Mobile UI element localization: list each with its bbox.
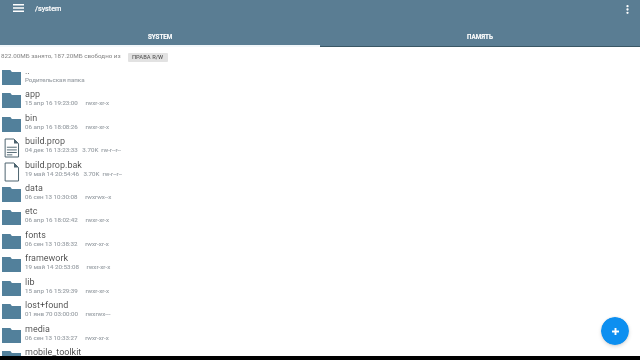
staticText: 06 апр 16 18:08:26 rwxr-xr-x	[25, 123, 110, 130]
button[interactable]: Add	[601, 317, 629, 345]
button[interactable]: build.prop.bak	[0, 160, 640, 183]
button[interactable]: SYSTEM	[0, 25, 320, 47]
staticText: lib	[25, 277, 35, 288]
staticText: /system	[35, 4, 62, 12]
button[interactable]: ПРАВА R/W	[128, 53, 168, 62]
button[interactable]: ПАМЯТЬ	[320, 25, 640, 47]
staticText: build.prop.bak	[25, 160, 82, 171]
button[interactable]: media	[0, 324, 640, 347]
staticText: bin	[25, 113, 38, 124]
staticText: 822.00МБ занято, 187.20МБ свободно из	[1, 52, 121, 59]
staticText: 06 апр 16 18:02:42 rwxr-xr-x	[25, 216, 110, 223]
button[interactable]: fonts	[0, 230, 640, 253]
staticText: 19 май 14 20:54:46 3.70K rw-r--r--	[25, 170, 123, 177]
button[interactable]: build.prop	[0, 136, 640, 159]
staticText: app	[25, 89, 41, 100]
staticText: Родительская папка	[25, 76, 85, 83]
button[interactable]: framework	[0, 253, 640, 276]
staticText: SYSTEM	[148, 33, 173, 40]
staticText: 01 янв 70 03:00:00 rwxrwx---	[25, 310, 111, 317]
staticText: 15 апр 16 19:23:00 rwxr-xr-x	[25, 99, 110, 106]
staticText: mobile_toolkit	[25, 347, 82, 358]
button[interactable]: Open navigation drawer	[7, 0, 29, 19]
staticText: ПРАВА R/W	[132, 54, 164, 61]
button[interactable]: lib	[0, 277, 640, 300]
staticText: fonts	[25, 230, 46, 241]
staticText: etc	[25, 206, 38, 217]
button[interactable]: bin	[0, 113, 640, 136]
staticText: 15 апр 16 15:29:39 rwxr-xr-x	[25, 287, 110, 294]
button[interactable]: data	[0, 183, 640, 206]
button[interactable]: etc	[0, 206, 640, 229]
staticText: build.prop	[25, 136, 66, 147]
staticText: ..	[25, 66, 30, 77]
staticText: ПАМЯТЬ	[467, 33, 493, 40]
staticText: framework	[25, 253, 69, 264]
staticText: 06 сен 13 10:38:32 rwxr-xr-x	[25, 240, 109, 247]
button[interactable]: More options	[616, 0, 638, 20]
staticText: 06 сен 13 10:30:08 rwxrwx--x	[25, 193, 112, 200]
button[interactable]: lost+found	[0, 300, 640, 323]
button[interactable]: mobile_toolkit	[0, 347, 640, 360]
staticText: 19 май 14 20:53:08 rwxr-xr-x	[25, 263, 111, 270]
button[interactable]: ..	[0, 66, 640, 89]
staticText: lost+found	[25, 300, 69, 311]
button[interactable]: app	[0, 89, 640, 112]
staticText: 06 сен 13 10:33:27 rwxr-xr-x	[25, 334, 109, 341]
staticText: 04 дек 16 13:23:33 3.70K rw-r--r--	[25, 146, 121, 153]
staticText: data	[25, 183, 43, 194]
staticText: media	[25, 324, 50, 335]
